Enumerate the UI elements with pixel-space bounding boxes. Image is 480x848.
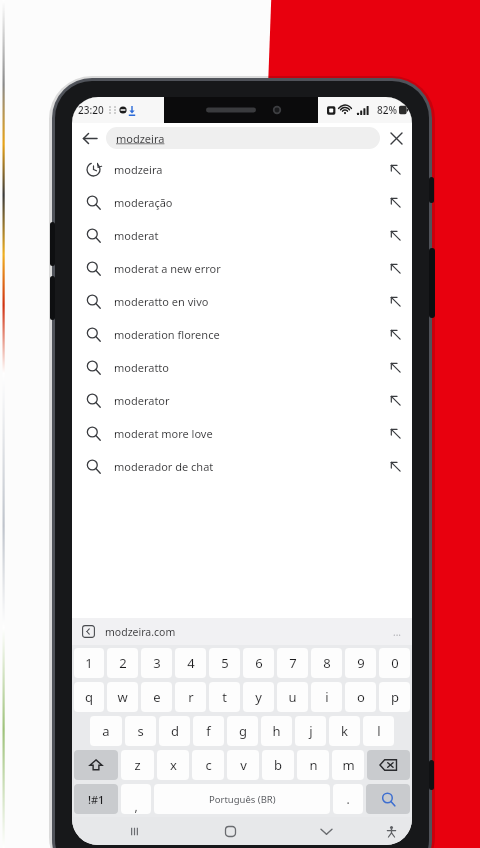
button[interactable]: 0	[379, 648, 410, 678]
button[interactable]: Accessibility	[374, 817, 408, 845]
staticText: 8	[323, 654, 331, 672]
staticText: x	[170, 756, 177, 774]
button[interactable]: y	[243, 682, 274, 712]
button[interactable]: moderat more love	[72, 417, 412, 450]
button[interactable]: j	[295, 716, 326, 746]
staticText: o	[357, 688, 365, 706]
staticText: j	[309, 722, 313, 740]
button[interactable]: moderatto en vivo	[72, 285, 412, 318]
button[interactable]: 8	[311, 648, 342, 678]
staticText: 7	[289, 654, 297, 672]
button[interactable]: moderação	[72, 186, 412, 219]
staticText: !#1	[88, 792, 105, 807]
button[interactable]: modzeira	[72, 153, 412, 186]
button[interactable]: g	[227, 716, 258, 746]
button[interactable]: 1	[74, 648, 104, 678]
button[interactable]: Recents	[86, 817, 182, 845]
button[interactable]: b	[262, 750, 294, 780]
button[interactable]: 2	[107, 648, 138, 678]
button[interactable]: r	[175, 682, 206, 712]
button[interactable]: q	[74, 682, 104, 712]
button[interactable]: v	[227, 750, 259, 780]
staticText: d	[171, 722, 179, 740]
button[interactable]: modzeira	[106, 127, 380, 149]
staticText: u	[288, 688, 297, 706]
button[interactable]: k	[329, 716, 360, 746]
button[interactable]: o	[345, 682, 376, 712]
button[interactable]: Clear	[380, 123, 412, 153]
button[interactable]: moderation florence	[72, 318, 412, 351]
staticText: 82%	[377, 103, 397, 117]
button[interactable]: moderat a new error	[72, 252, 412, 285]
staticText: moderatto en vivo	[114, 294, 378, 309]
button[interactable]: w	[107, 682, 138, 712]
button[interactable]: moderator	[72, 384, 412, 417]
staticText: moderação	[114, 195, 378, 210]
button[interactable]: m	[332, 750, 364, 780]
staticText: 0	[391, 654, 399, 672]
staticText: v	[240, 756, 247, 774]
button[interactable]: moderatto	[72, 351, 412, 384]
staticText: t	[222, 688, 227, 706]
button[interactable]: moderat	[72, 219, 412, 252]
button[interactable]: Shift	[74, 750, 118, 780]
button[interactable]: modzeira.com	[72, 618, 412, 645]
staticText: ,	[134, 798, 138, 814]
staticText: w	[117, 688, 128, 706]
button[interactable]: u	[277, 682, 308, 712]
staticText: k	[341, 722, 348, 740]
button[interactable]: ,	[121, 784, 151, 814]
button[interactable]: f	[193, 716, 224, 746]
button[interactable]: Home	[182, 817, 278, 845]
staticText: q	[85, 688, 93, 706]
staticText: f	[206, 722, 211, 740]
staticText: z	[134, 756, 141, 774]
staticText: .	[346, 791, 350, 807]
button[interactable]: .	[333, 784, 363, 814]
button[interactable]: p	[379, 682, 410, 712]
staticText: moderador de chat	[114, 459, 378, 474]
button[interactable]: 5	[209, 648, 240, 678]
button[interactable]: Hide keyboard	[278, 817, 374, 845]
staticText: moderat	[114, 228, 378, 243]
staticText: m	[342, 756, 355, 774]
button[interactable]: 3	[141, 648, 172, 678]
staticText: moderator	[114, 393, 378, 408]
button[interactable]: z	[121, 750, 154, 780]
button[interactable]: l	[363, 716, 394, 746]
button[interactable]: Backspace	[367, 750, 410, 780]
staticText: modzeira	[114, 162, 378, 177]
button[interactable]: 4	[175, 648, 206, 678]
button[interactable]: x	[157, 750, 189, 780]
staticText: moderat a new error	[114, 261, 378, 276]
button[interactable]: e	[141, 682, 172, 712]
button[interactable]: 9	[345, 648, 376, 678]
button[interactable]: a	[90, 716, 122, 746]
staticText: s	[137, 722, 144, 740]
staticText: modzeira	[116, 131, 165, 146]
staticText: e	[153, 688, 161, 706]
button[interactable]: 6	[243, 648, 274, 678]
button[interactable]: i	[311, 682, 342, 712]
button[interactable]: h	[261, 716, 292, 746]
button[interactable]: n	[297, 750, 329, 780]
button[interactable]: Search	[366, 784, 410, 814]
button[interactable]: c	[192, 750, 224, 780]
button[interactable]: t	[209, 682, 240, 712]
button[interactable]: 7	[277, 648, 308, 678]
button[interactable]: Back	[72, 123, 106, 153]
button[interactable]: moderador de chat	[72, 450, 412, 483]
staticText: 2	[119, 654, 127, 672]
staticText: modzeira.com	[105, 625, 393, 639]
staticText: moderation florence	[114, 327, 378, 342]
button[interactable]: s	[125, 716, 156, 746]
staticText: p	[391, 688, 399, 706]
staticText: moderat more love	[114, 426, 378, 441]
button[interactable]: Português (BR)	[154, 784, 330, 814]
staticText: 23:20	[78, 103, 104, 117]
staticText: 4	[187, 654, 195, 672]
button[interactable]: d	[159, 716, 190, 746]
button[interactable]: !#1	[74, 784, 118, 814]
staticText: c	[205, 756, 212, 774]
staticText: 9	[357, 654, 365, 672]
